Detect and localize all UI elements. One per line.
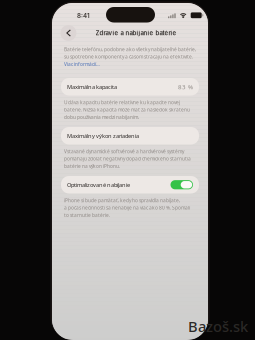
staticText: to starnutie batérie.	[64, 212, 110, 218]
staticText: Bazoš.sk	[188, 316, 248, 336]
staticText: Maximálny výkon zariadenia	[67, 132, 139, 140]
staticText: a počas nečinnosti sa nenabije na viac a…	[64, 204, 190, 211]
staticText: Zdravie a nabíjanie batérie	[95, 29, 176, 37]
staticText: pomáhajú zdolať negatívny dopad chemické…	[64, 155, 191, 162]
staticText: Maximálna kapacita	[67, 83, 117, 91]
staticText: Udáva kapacitu batérie relatívne ku kapa…	[64, 99, 180, 105]
button[interactable]: Maximálny výkon zariadenia	[61, 127, 199, 144]
staticText: iPhone si bude pamätať, kedy ho spravidl…	[64, 197, 180, 203]
staticText: Batérie telefónu, podobne ako všetky nab…	[64, 46, 196, 52]
staticText: Vstavané dynamické softvérové a hardvéro…	[64, 148, 184, 154]
staticText: sú spotrebné komponenty a časom strácajú…	[64, 53, 193, 60]
staticText: 8:41	[77, 12, 90, 19]
button[interactable]: Viac informácií…	[64, 61, 100, 67]
staticText: 83 %	[178, 83, 193, 91]
button[interactable]: Optimalizované nabíjanie	[61, 176, 199, 193]
staticText: batérie na výkon iPhonu.	[64, 163, 120, 169]
button[interactable]: Back	[60, 25, 76, 41]
staticText: dobu používania medzi nabíjaním.	[64, 114, 139, 120]
staticText: batérie. Nižšia kapacita môže mať za nás…	[64, 106, 190, 113]
staticText: Viac informácií…	[64, 61, 100, 67]
button[interactable]: Maximálna kapacita	[61, 78, 199, 95]
staticText: Optimalizované nabíjanie	[67, 181, 130, 189]
